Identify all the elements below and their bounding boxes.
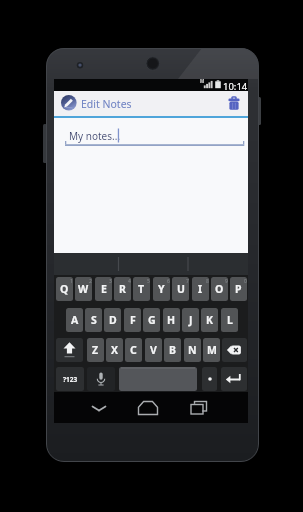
button[interactable]: S <box>85 308 102 332</box>
button[interactable]: U <box>172 277 189 301</box>
button[interactable]: C <box>125 338 142 362</box>
button[interactable]: T <box>133 277 150 301</box>
staticText: B <box>169 343 176 357</box>
button[interactable] <box>89 399 109 417</box>
staticText: Z <box>92 343 99 357</box>
staticText: P <box>235 282 242 296</box>
button[interactable] <box>226 94 242 112</box>
staticText: 1 <box>70 278 73 285</box>
button[interactable] <box>221 367 247 391</box>
button[interactable] <box>189 399 209 417</box>
button[interactable]: A <box>66 308 83 332</box>
button[interactable]: F <box>124 308 141 332</box>
button[interactable] <box>202 367 217 391</box>
staticText: D <box>109 313 117 327</box>
staticText: G <box>148 313 156 327</box>
staticText: K <box>206 313 213 327</box>
button[interactable]: ?123 <box>56 367 84 391</box>
button[interactable]: O <box>211 277 228 301</box>
staticText: V <box>150 343 157 357</box>
staticText: ?123 <box>63 375 78 384</box>
staticText: 8 <box>206 278 209 285</box>
button[interactable]: L <box>221 308 238 332</box>
staticText: S <box>91 313 97 327</box>
staticText: 3 <box>109 278 112 285</box>
staticText: Q <box>60 282 69 296</box>
button[interactable]: Z <box>87 338 104 362</box>
button[interactable]: N <box>184 338 201 362</box>
staticText: 5 <box>147 278 150 285</box>
button[interactable]: E <box>95 277 112 301</box>
staticText: T <box>138 282 145 296</box>
staticText: I <box>198 282 203 296</box>
staticText: Y <box>158 282 165 296</box>
staticText: Edit Notes <box>81 97 132 111</box>
staticText: 0 <box>244 278 247 285</box>
button[interactable]: M <box>203 338 220 362</box>
button[interactable]: X <box>106 338 123 362</box>
button[interactable]: D <box>104 308 121 332</box>
staticText: 4 <box>128 278 131 285</box>
staticText: M <box>200 78 205 84</box>
staticText: R <box>119 282 126 296</box>
staticText: L <box>227 313 233 327</box>
staticText: O <box>215 282 224 296</box>
staticText: J <box>189 313 193 327</box>
button[interactable]: Y <box>153 277 170 301</box>
button[interactable] <box>137 399 159 417</box>
button[interactable] <box>56 338 83 362</box>
staticText: My notes... <box>69 129 121 143</box>
staticText: 9 <box>225 278 228 285</box>
button[interactable]: W <box>75 277 92 301</box>
button[interactable]: P <box>230 277 247 301</box>
staticText: C <box>130 343 137 357</box>
button[interactable]: B <box>164 338 181 362</box>
staticText: M <box>207 343 217 357</box>
staticText: N <box>188 343 197 357</box>
staticText: W <box>78 282 89 296</box>
staticText: 7 <box>186 278 189 285</box>
button[interactable] <box>87 367 115 391</box>
button[interactable]: Q <box>56 277 73 301</box>
button[interactable]: G <box>143 308 160 332</box>
button[interactable]: I <box>192 277 209 301</box>
button[interactable]: My notes... <box>54 118 248 254</box>
staticText: A <box>71 313 79 327</box>
button[interactable]: J <box>182 308 199 332</box>
button[interactable]: V <box>145 338 162 362</box>
button[interactable]: H <box>163 308 180 332</box>
button[interactable]: K <box>201 308 218 332</box>
staticText: F <box>130 313 136 327</box>
button[interactable] <box>222 338 247 362</box>
staticText: 6 <box>167 278 170 285</box>
staticText: 10:14 <box>223 80 248 92</box>
button[interactable] <box>119 367 197 391</box>
staticText: X <box>111 343 119 357</box>
staticText: H <box>167 313 176 327</box>
button[interactable]: R <box>114 277 131 301</box>
staticText: 2 <box>89 278 92 285</box>
staticText: E <box>101 282 107 296</box>
staticText: U <box>177 282 185 296</box>
